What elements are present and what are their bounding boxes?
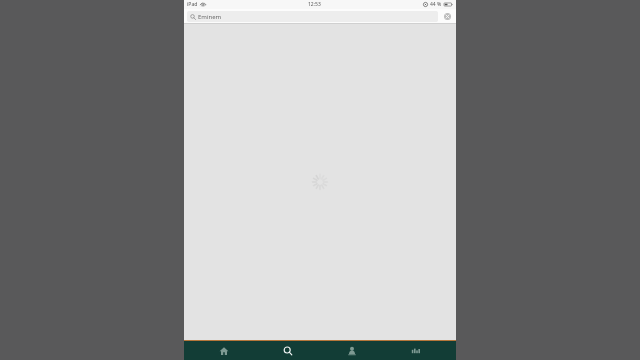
button[interactable]: Profile — [328, 341, 376, 360]
button[interactable]: Eminem — [187, 11, 438, 22]
staticText: Eminem — [198, 13, 222, 21]
staticText: iPad — [187, 1, 198, 8]
staticText: 44 % — [430, 1, 442, 8]
button[interactable]: Library — [392, 341, 440, 360]
button[interactable]: Clear search — [442, 11, 453, 22]
staticText: 12:53 — [308, 1, 321, 8]
button[interactable]: Home — [200, 341, 248, 360]
button[interactable]: Search — [264, 341, 312, 360]
